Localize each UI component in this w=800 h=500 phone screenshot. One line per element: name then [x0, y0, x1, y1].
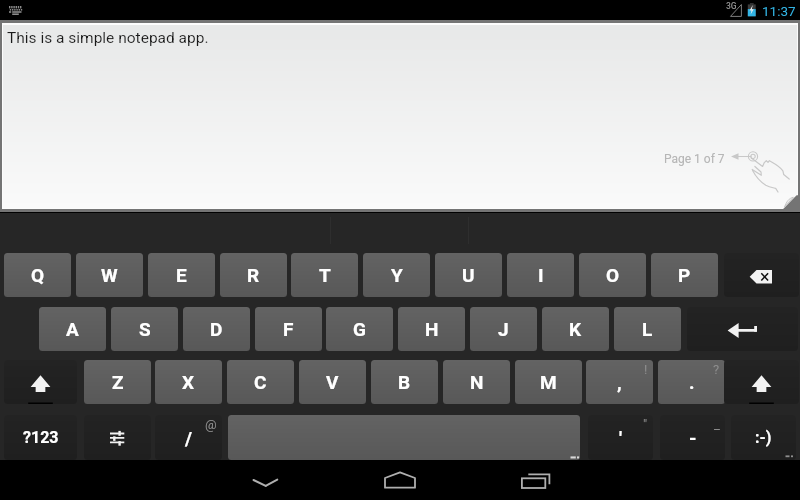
staticText: 3G	[726, 1, 737, 11]
button[interactable]: D	[183, 307, 250, 351]
staticText: ?123	[23, 428, 59, 447]
staticText: O	[606, 264, 620, 286]
staticText: "	[643, 417, 648, 432]
button[interactable]: G	[326, 307, 393, 351]
button[interactable]: Enter	[687, 307, 798, 351]
staticText: S	[139, 318, 151, 340]
staticText: G	[353, 318, 366, 340]
button[interactable]: P	[651, 253, 718, 297]
button[interactable]: C	[227, 360, 294, 404]
staticText: Y	[391, 264, 403, 286]
staticText: N	[470, 371, 484, 393]
staticText: M	[540, 371, 557, 393]
button[interactable]: Y	[363, 253, 430, 297]
button[interactable]: Space	[228, 415, 580, 460]
staticText: I	[538, 264, 544, 286]
staticText: .	[689, 371, 695, 393]
button[interactable]: O	[579, 253, 646, 297]
button[interactable]: Recent apps	[506, 462, 566, 500]
staticText: A	[66, 318, 79, 340]
button[interactable]: E	[148, 253, 215, 297]
staticText: @	[205, 417, 217, 432]
button[interactable]: A	[39, 307, 106, 351]
staticText: ,	[617, 371, 622, 393]
staticText: C	[254, 371, 267, 393]
button[interactable]: '	[588, 415, 653, 460]
button[interactable]: L	[614, 307, 681, 351]
button[interactable]: N	[443, 360, 510, 404]
button[interactable]: S	[111, 307, 178, 351]
button[interactable]: V	[299, 360, 366, 404]
button[interactable]: B	[371, 360, 438, 404]
button[interactable]: J	[470, 307, 537, 351]
staticText: B	[398, 371, 411, 393]
button[interactable]: Q	[4, 253, 71, 297]
button[interactable]: Shift	[4, 360, 77, 404]
staticText: L	[642, 318, 653, 340]
staticText: P	[678, 264, 691, 286]
staticText: _	[714, 417, 720, 432]
button[interactable]: Shift	[724, 360, 799, 404]
button[interactable]: Backspace	[724, 253, 799, 297]
button[interactable]: M	[515, 360, 582, 404]
staticText: !	[644, 362, 648, 377]
staticText: Q	[31, 264, 45, 286]
button[interactable]: ,	[586, 360, 653, 404]
staticText: X	[182, 371, 195, 393]
staticText: T	[319, 264, 331, 286]
button[interactable]: W	[76, 253, 143, 297]
button[interactable]: Input settings	[84, 415, 151, 460]
staticText: /	[185, 427, 193, 449]
staticText: K	[569, 318, 582, 340]
button[interactable]: -	[660, 415, 725, 460]
button[interactable]: ?123	[4, 415, 77, 460]
staticText: Page 1 of 7	[664, 152, 725, 166]
staticText: This is a simple notepad app.	[7, 29, 209, 47]
button[interactable]: /	[155, 415, 222, 460]
button[interactable]: H	[398, 307, 465, 351]
staticText: E	[176, 264, 187, 286]
staticText: R	[247, 264, 260, 286]
button[interactable]: Z	[84, 360, 151, 404]
button[interactable]: X	[155, 360, 222, 404]
staticText: '	[619, 427, 623, 449]
staticText: D	[210, 318, 223, 340]
button[interactable]: Home	[370, 462, 430, 500]
staticText: H	[425, 318, 439, 340]
staticText: -	[689, 427, 697, 449]
staticText: :-)	[755, 428, 772, 447]
staticText: F	[283, 318, 294, 340]
staticText: U	[462, 264, 475, 286]
staticText: J	[498, 318, 509, 340]
button[interactable]: U	[435, 253, 502, 297]
staticText: ?	[713, 362, 720, 377]
staticText: Z	[112, 371, 124, 393]
button[interactable]: F	[255, 307, 322, 351]
button[interactable]: I	[507, 253, 574, 297]
staticText: V	[326, 371, 339, 393]
button[interactable]: .	[658, 360, 725, 404]
staticText: 11:37	[762, 3, 796, 19]
button[interactable]: T	[291, 253, 358, 297]
button[interactable]: K	[542, 307, 609, 351]
button[interactable]: Hide keyboard	[232, 462, 298, 500]
staticText: W	[101, 264, 118, 286]
button[interactable]: :-)	[731, 415, 796, 460]
button[interactable]: R	[220, 253, 287, 297]
